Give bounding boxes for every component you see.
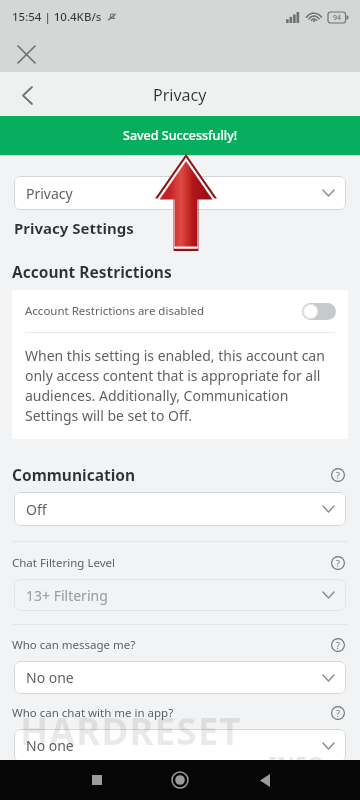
button[interactable]: Help [328,465,348,485]
button[interactable]: Back [248,763,282,797]
button[interactable]: Account Restrictions are disabled [12,290,348,332]
staticText: Account Restrictions are disabled [25,303,204,319]
staticText: .INFO [262,748,325,778]
staticText: Privacy [26,184,73,203]
staticText: Communication [12,464,136,485]
button[interactable]: Help [328,635,348,655]
button[interactable]: No one [14,661,346,694]
staticText: HARDRESET [20,705,242,755]
button[interactable]: Close [8,36,44,72]
button[interactable]: 13+ Filtering [14,579,346,611]
staticText: No one [26,736,74,755]
staticText: Chat Filtering Level [12,555,115,571]
staticText: ? [336,639,340,651]
staticText: 94 [333,13,342,23]
button[interactable]: Privacy [14,176,346,210]
button[interactable]: Help [328,553,348,573]
staticText: Privacy [153,84,207,106]
staticText: ? [336,707,340,719]
staticText: Off [26,500,47,519]
button[interactable]: Off [14,492,346,526]
button[interactable]: Recents [80,763,114,797]
staticText: ? [336,469,340,481]
staticText: ? [336,557,340,569]
staticText: Saved Successfully! [123,127,238,144]
staticText: Who can chat with me in app? [12,705,174,721]
button[interactable]: Back [8,76,46,114]
staticText: Who can message me? [12,637,136,653]
staticText: No one [26,668,74,687]
staticText: 13+ Filtering [26,586,108,605]
button[interactable]: Account Restrictions toggle [302,303,336,320]
button[interactable]: Home [163,763,197,797]
staticText: Privacy Settings [14,218,134,238]
staticText: When this setting is enabled, this accou… [25,346,336,425]
staticText: 15:54 | 10.4KB/s [12,9,102,25]
button[interactable]: No one [14,729,346,762]
staticText: Account Restrictions [12,261,172,282]
button[interactable]: Help [328,703,348,723]
